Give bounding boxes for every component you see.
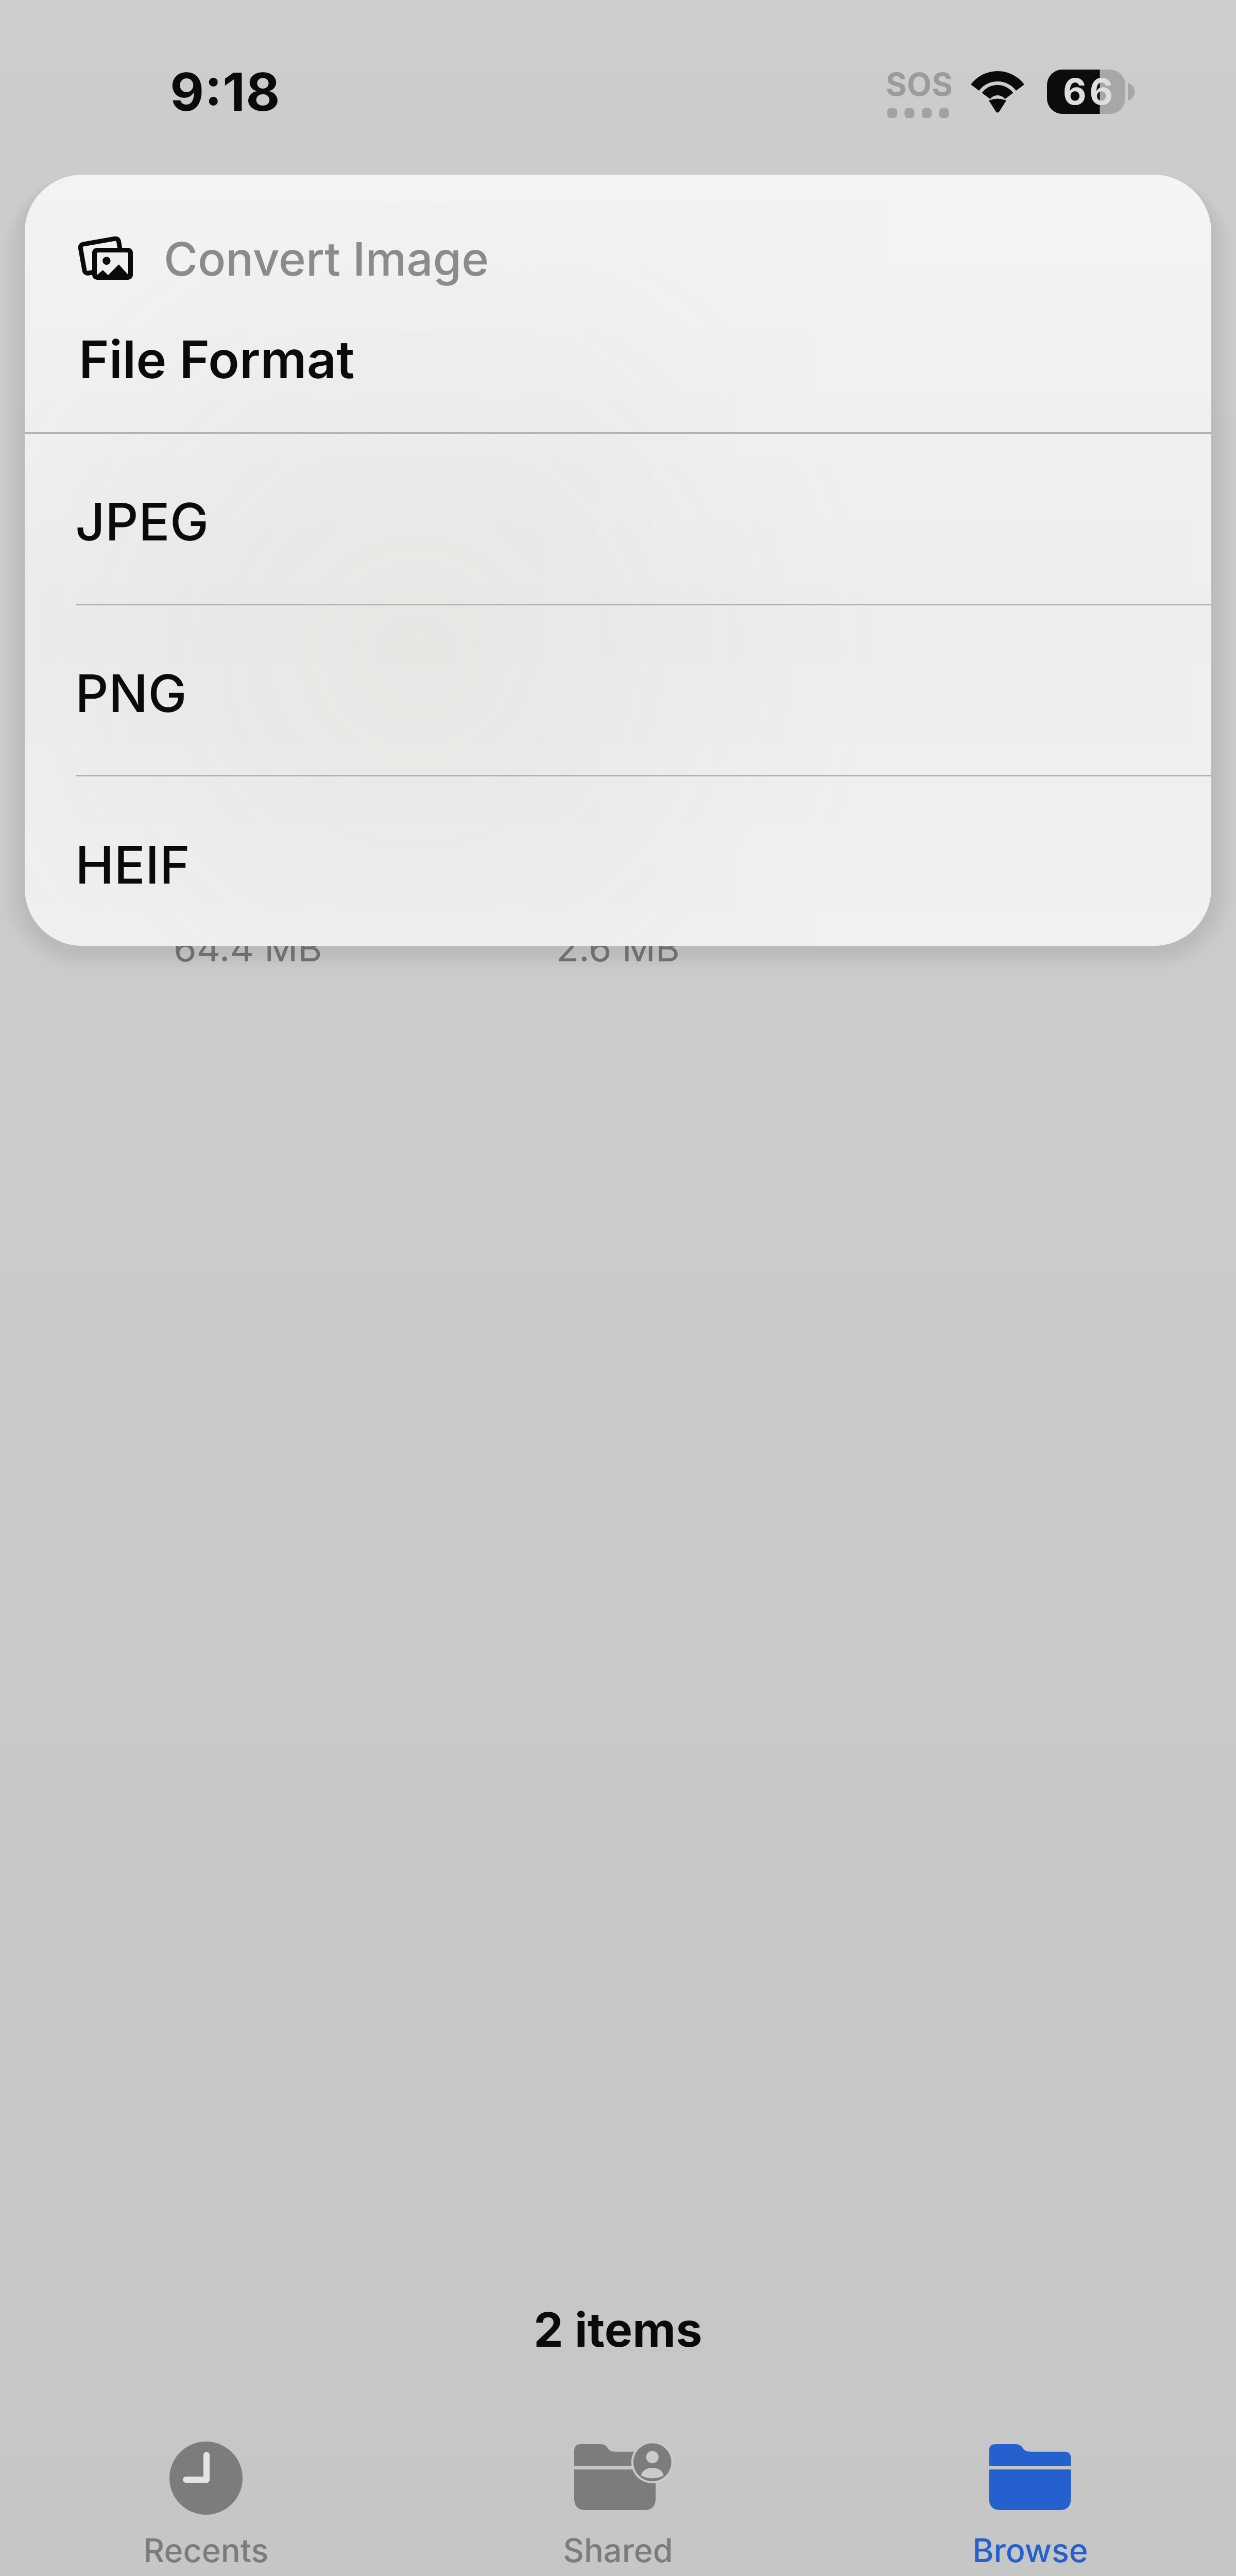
button[interactable]: HEIF — [25, 776, 1211, 946]
staticText: 9:18 — [170, 60, 281, 123]
staticText: 2.6 MB — [556, 925, 680, 970]
staticText: Browse — [972, 2531, 1088, 2570]
staticText: 66 — [1063, 70, 1116, 113]
staticText: Shared — [563, 2531, 673, 2570]
staticText: Recents — [143, 2531, 269, 2570]
button[interactable]: Recents — [0, 2432, 412, 2576]
staticText: PNG — [75, 662, 187, 724]
button[interactable]: JPEG — [25, 434, 1211, 604]
button[interactable]: PNG — [25, 605, 1211, 775]
staticText: HEIF — [75, 833, 191, 896]
button[interactable]: Shared — [412, 2432, 824, 2576]
staticText: 2 items — [534, 2301, 702, 2358]
staticText: File Format — [79, 328, 355, 391]
staticText: JPEG — [75, 490, 209, 553]
button[interactable]: Browse — [824, 2432, 1236, 2576]
staticText: 64.4 MB — [174, 925, 322, 970]
staticText: SOS — [886, 65, 953, 104]
staticText: Convert Image — [164, 231, 489, 287]
